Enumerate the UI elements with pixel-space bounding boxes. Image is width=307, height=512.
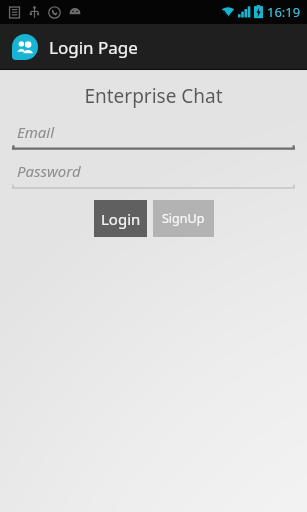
- staticText: SignUp: [162, 210, 205, 227]
- button[interactable]: SignUp: [153, 200, 214, 237]
- button[interactable]: Email: [12, 118, 295, 150]
- other: App icon: [12, 34, 38, 60]
- staticText: 16:19: [267, 3, 301, 21]
- button[interactable]: Login: [94, 200, 147, 237]
- button[interactable]: Password: [12, 157, 295, 189]
- staticText: Email: [17, 122, 55, 142]
- staticText: Login Page: [49, 36, 138, 59]
- staticText: Password: [17, 161, 81, 181]
- staticText: Enterprise Chat: [0, 83, 307, 109]
- staticText: Login: [101, 209, 141, 229]
